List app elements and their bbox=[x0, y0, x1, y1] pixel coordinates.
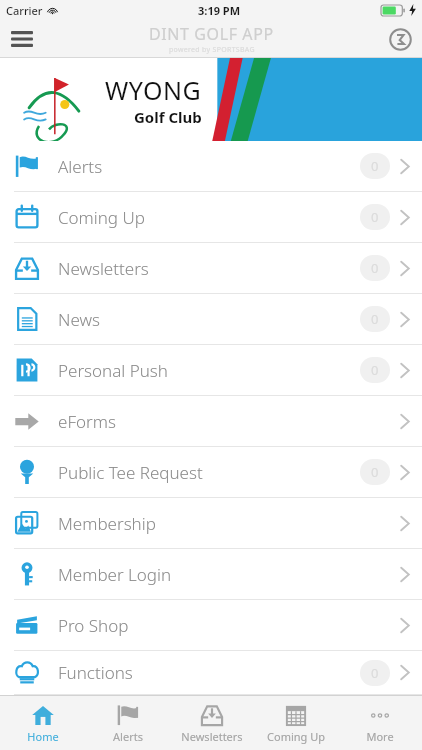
button[interactable]: Pro Shop bbox=[0, 600, 422, 651]
button[interactable]: Menu bbox=[0, 20, 44, 58]
button[interactable]: News bbox=[0, 294, 422, 345]
staticText: 0 bbox=[371, 310, 379, 328]
staticText: Newsletters bbox=[58, 257, 149, 280]
staticText: 3:19 PM bbox=[198, 3, 241, 18]
button[interactable]: Personal Push bbox=[0, 345, 422, 396]
button[interactable]: Coming Up bbox=[254, 696, 338, 750]
staticText: Functions bbox=[58, 661, 133, 684]
button[interactable]: Alerts bbox=[0, 141, 422, 192]
button[interactable]: Newsletters bbox=[170, 696, 254, 750]
staticText: 0 bbox=[371, 157, 379, 175]
staticText: More bbox=[366, 729, 394, 744]
button[interactable]: Functions bbox=[0, 651, 422, 695]
staticText: News bbox=[58, 308, 100, 331]
button[interactable]: Member Login bbox=[0, 549, 422, 600]
button[interactable]: Public Tee Request bbox=[0, 447, 422, 498]
staticText: eForms bbox=[58, 410, 116, 433]
staticText: Public Tee Request bbox=[58, 461, 203, 484]
staticText: 0 bbox=[371, 463, 379, 481]
staticText: Personal Push bbox=[58, 359, 168, 382]
staticText: Home bbox=[27, 729, 59, 744]
staticText: Coming Up bbox=[267, 729, 325, 744]
staticText: powered by SPORTSBAG bbox=[169, 45, 255, 55]
staticText: Pro Shop bbox=[58, 614, 129, 637]
staticText: DINT GOLF APP bbox=[149, 23, 274, 45]
staticText: WYONG bbox=[105, 73, 202, 107]
button[interactable]: Coming Up bbox=[0, 192, 422, 243]
staticText: Membership bbox=[58, 512, 156, 535]
staticText: Coming Up bbox=[58, 206, 145, 229]
staticText: Newsletters bbox=[181, 729, 243, 744]
button[interactable]: Alerts bbox=[85, 696, 170, 750]
staticText: Carrier bbox=[6, 3, 43, 18]
button[interactable]: Refresh bbox=[378, 20, 422, 58]
staticText: 0 bbox=[371, 361, 379, 379]
staticText: 0 bbox=[371, 664, 379, 682]
staticText: Alerts bbox=[58, 155, 103, 178]
staticText: Alerts bbox=[113, 729, 143, 744]
button[interactable]: Home bbox=[0, 696, 85, 750]
staticText: 0 bbox=[371, 208, 379, 226]
button[interactable]: More bbox=[338, 696, 422, 750]
button[interactable]: eForms bbox=[0, 396, 422, 447]
button[interactable]: Membership bbox=[0, 498, 422, 549]
staticText: Member Login bbox=[58, 563, 172, 586]
staticText: 0 bbox=[371, 259, 379, 277]
button[interactable]: Newsletters bbox=[0, 243, 422, 294]
staticText: Golf Club bbox=[134, 107, 202, 127]
